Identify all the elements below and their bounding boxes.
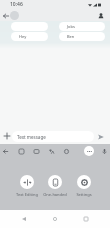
button[interactable]: Back <box>0 146 10 156</box>
button[interactable]: Emoji <box>61 146 71 156</box>
staticText: One-handed <box>43 192 67 197</box>
staticText: 10:46 <box>10 1 23 8</box>
staticText: Settings <box>76 192 92 197</box>
button[interactable]: Contact avatar <box>10 11 19 20</box>
button[interactable]: Back <box>17 212 31 226</box>
button[interactable]: Send <box>95 131 106 142</box>
button[interactable]: Account <box>95 10 106 21</box>
staticText: Text Editing <box>16 192 38 197</box>
staticText: Ben <box>67 34 75 39</box>
button[interactable]: Text Editing <box>13 158 41 197</box>
button[interactable]: Back <box>0 10 11 21</box>
staticText: Text message <box>17 134 46 140</box>
button[interactable] <box>11 22 48 31</box>
button[interactable]: Text message <box>12 131 94 142</box>
button[interactable]: Translate <box>46 146 56 156</box>
button[interactable]: Stickers <box>16 146 26 156</box>
button[interactable]: Ben <box>59 32 105 41</box>
button[interactable]: Recent apps <box>79 212 93 226</box>
button[interactable]: One-handed <box>41 158 69 197</box>
button[interactable]: GIF <box>31 146 41 156</box>
button[interactable]: Home <box>48 212 62 226</box>
button[interactable]: Hey <box>11 32 48 41</box>
button[interactable]: More options <box>84 146 94 156</box>
button[interactable]: Voice input <box>99 146 109 156</box>
staticText: Hey <box>19 34 27 39</box>
button[interactable]: Add attachment <box>2 131 12 141</box>
staticText: Jobs <box>67 24 75 29</box>
button[interactable]: Settings <box>70 158 98 197</box>
button[interactable]: Jobs <box>59 22 105 31</box>
